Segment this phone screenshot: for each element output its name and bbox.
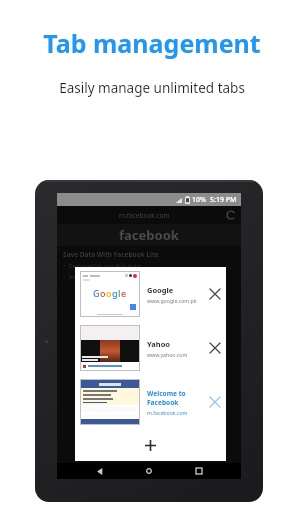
staticText: Save Data With Facebook Lite xyxy=(63,250,159,259)
staticText: Welcome to Facebook xyxy=(147,389,204,407)
staticText: G xyxy=(93,287,100,299)
staticText: g xyxy=(112,287,118,299)
staticText: Yahoo xyxy=(147,339,171,349)
staticText: • Installs quickly on 2G networks xyxy=(63,273,156,281)
button[interactable]: Close tab Yahoo xyxy=(204,337,226,359)
staticText: e xyxy=(121,287,127,299)
staticText: 10% xyxy=(192,195,206,205)
button[interactable]: Yahoo xyxy=(75,321,226,375)
staticText: m.facebook.com xyxy=(119,211,170,220)
button[interactable]: Close tab Google xyxy=(204,283,226,305)
staticText: o xyxy=(106,287,112,299)
staticText: o xyxy=(100,287,106,299)
button[interactable]: Close tab Welcome to Facebook xyxy=(204,391,226,413)
staticText: Tab management xyxy=(43,26,261,60)
staticText: Easily manage unlimited tabs xyxy=(59,79,245,97)
staticText: m.facebook.com xyxy=(147,409,188,416)
button[interactable]: Welcome to Facebook xyxy=(75,375,226,429)
button[interactable]: Recent apps xyxy=(191,463,207,479)
button[interactable]: G xyxy=(75,267,226,321)
button[interactable]: New tab xyxy=(75,429,226,461)
button[interactable]: Home xyxy=(141,463,157,479)
staticText: l xyxy=(118,287,121,299)
staticText: • Designed to use less data xyxy=(63,262,141,270)
staticText: www.google.com.pk xyxy=(147,297,197,304)
staticText: Google xyxy=(147,285,174,295)
staticText: facebook xyxy=(119,226,179,244)
staticText: 5:19 PM xyxy=(210,195,237,205)
staticText: www.yahoo.com xyxy=(147,351,188,358)
button[interactable]: Back xyxy=(91,463,107,479)
